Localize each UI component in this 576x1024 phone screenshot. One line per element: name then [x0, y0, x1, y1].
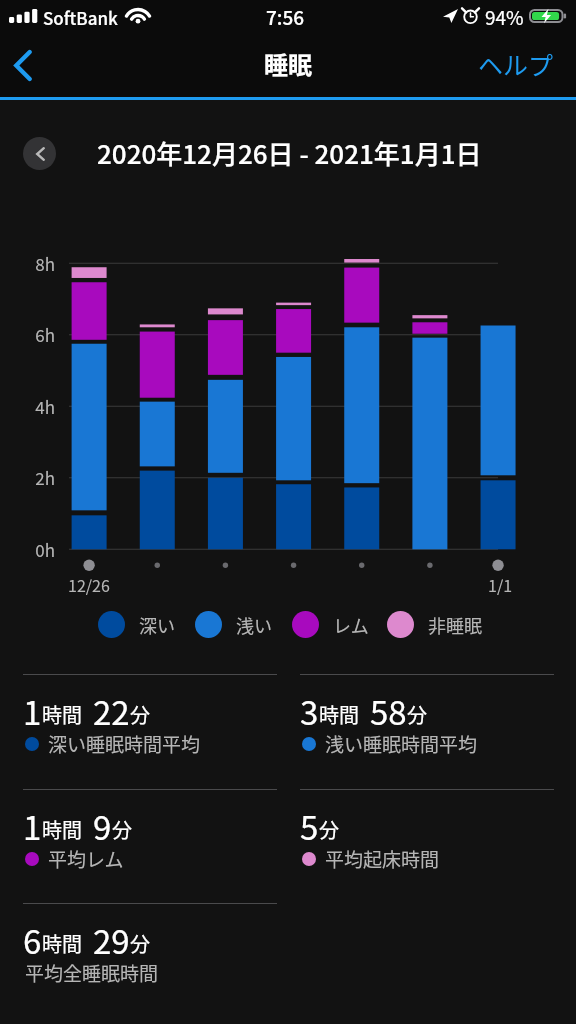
staticText: 22: [93, 687, 130, 735]
staticText: 5: [300, 802, 319, 850]
staticText: 睡眠: [264, 46, 312, 81]
staticText: 94%: [485, 3, 524, 31]
staticText: 3: [300, 687, 319, 735]
staticText: 深い睡眠時間平均: [48, 730, 201, 758]
staticText: 58: [370, 687, 407, 735]
staticText: 平均起床時間: [325, 845, 440, 873]
staticText: 分: [407, 700, 427, 729]
button[interactable]: 浅い: [195, 611, 272, 638]
button[interactable]: 1: [23, 789, 277, 903]
staticText: 浅い睡眠時間平均: [325, 730, 478, 758]
button[interactable]: 1: [23, 674, 277, 788]
staticText: 6: [23, 916, 42, 964]
staticText: 時間: [42, 700, 82, 729]
staticText: 分: [319, 815, 339, 844]
staticText: 平均レム: [48, 845, 124, 873]
button[interactable]: 非睡眠: [387, 611, 482, 638]
staticText: 7:56: [266, 3, 305, 31]
staticText: 8h: [22, 251, 55, 276]
button[interactable]: Back: [0, 40, 56, 92]
staticText: 0h: [22, 537, 55, 562]
staticText: レム: [333, 612, 369, 638]
staticText: 深い: [139, 612, 175, 638]
button[interactable]: 3: [300, 674, 554, 788]
staticText: ヘルプ: [478, 46, 554, 82]
staticText: 分: [130, 929, 150, 958]
staticText: 1: [23, 687, 42, 735]
staticText: 4h: [22, 394, 55, 419]
staticText: 浅い: [236, 612, 272, 638]
staticText: 非睡眠: [428, 612, 482, 638]
staticText: 分: [112, 815, 132, 844]
staticText: 時間: [319, 700, 359, 729]
button[interactable]: Previous week: [23, 137, 56, 170]
staticText: 1/1: [488, 573, 513, 596]
staticText: 平均全睡眠時間: [25, 959, 159, 987]
staticText: 1: [23, 802, 42, 850]
staticText: 29: [93, 916, 130, 964]
staticText: 時間: [42, 929, 82, 958]
staticText: 12/26: [68, 573, 110, 596]
staticText: 2h: [22, 465, 55, 490]
staticText: 6h: [22, 322, 55, 347]
staticText: SoftBank: [43, 5, 118, 30]
button[interactable]: レム: [292, 611, 369, 638]
staticText: 分: [130, 700, 150, 729]
staticText: 時間: [42, 815, 82, 844]
button[interactable]: ヘルプ: [478, 40, 554, 87]
staticText: 2020年12月26日 - 2021年1月1日: [97, 134, 482, 172]
button[interactable]: 6: [23, 903, 277, 1017]
button[interactable]: 5: [300, 789, 554, 903]
button[interactable]: 深い: [98, 611, 175, 638]
staticText: 9: [93, 802, 112, 850]
